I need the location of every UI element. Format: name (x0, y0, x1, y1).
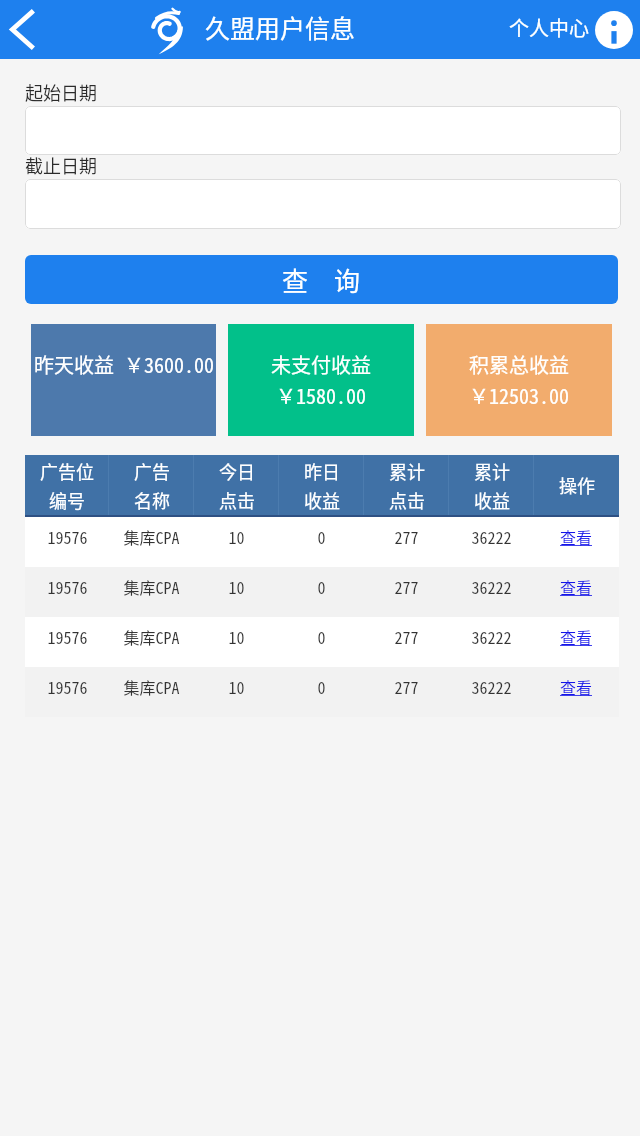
staticText: 查看 (560, 625, 593, 648)
staticText: 277 (394, 525, 419, 548)
button[interactable]: 累计 收益 (449, 455, 534, 515)
staticText: 查看 (560, 675, 593, 698)
button[interactable]: 19576 (25, 517, 619, 567)
staticText: 36222 (471, 675, 512, 698)
button[interactable]: 19576 (25, 567, 619, 617)
staticText: 今日 点击 (219, 458, 255, 513)
staticText: 个人中心 (509, 13, 589, 42)
staticText: 查看 (560, 525, 593, 548)
staticText: 277 (394, 625, 419, 648)
staticText: 0 (317, 525, 326, 548)
staticText: 36222 (471, 575, 512, 598)
staticText: 19576 (47, 575, 88, 598)
button[interactable]: 查 询 (25, 255, 618, 304)
staticText: 0 (317, 675, 326, 698)
staticText: 积累总收益 ￥12503.00 (469, 350, 569, 410)
staticText: 截止日期 (25, 152, 97, 178)
button[interactable]: 未支付收益 ￥1580.00 (228, 324, 414, 436)
staticText: 0 (317, 625, 326, 648)
button[interactable]: 广告位 编号 (25, 455, 109, 515)
button[interactable]: 积累总收益 ￥12503.00 (426, 324, 612, 436)
button[interactable]: 昨天收益 ￥3600.00 (31, 324, 216, 436)
staticText: 累计 点击 (389, 458, 425, 513)
button[interactable]: 累计 点击 (364, 455, 449, 515)
staticText: 36222 (471, 625, 512, 648)
staticText: 操作 (559, 472, 595, 498)
button[interactable]: Back (0, 0, 44, 59)
button[interactable]: 19576 (25, 617, 619, 667)
staticText: 广告位 编号 (40, 458, 94, 513)
button[interactable]: 19576 (25, 667, 619, 717)
staticText: 19576 (47, 525, 88, 548)
button[interactable]: 广告 名称 (109, 455, 194, 515)
staticText: 查看 (560, 575, 593, 598)
staticText: 10 (228, 625, 245, 648)
button[interactable]: 查看 (534, 617, 619, 667)
button[interactable]: 查看 (534, 667, 619, 717)
button[interactable] (25, 179, 621, 229)
staticText: 久盟用户信息 (205, 9, 356, 45)
staticText: 0 (317, 575, 326, 598)
button[interactable]: 查看 (534, 567, 619, 617)
staticText: 起始日期 (25, 79, 97, 105)
staticText: 277 (394, 675, 419, 698)
staticText: 19576 (47, 675, 88, 698)
staticText: 累计 收益 (474, 458, 510, 513)
staticText: 10 (228, 675, 245, 698)
staticText: 10 (228, 525, 245, 548)
button[interactable]: 查看 (534, 517, 619, 567)
staticText: 昨天收益 ￥3600.00 (34, 350, 214, 410)
staticText: 36222 (471, 525, 512, 548)
staticText: 昨日 收益 (304, 458, 340, 513)
staticText: 集库CPA (123, 675, 180, 698)
staticText: 集库CPA (123, 575, 180, 598)
staticText: 集库CPA (123, 525, 180, 548)
button[interactable]: 操作 (534, 455, 619, 515)
staticText: 10 (228, 575, 245, 598)
staticText: 集库CPA (123, 625, 180, 648)
button[interactable]: 个人中心 (509, 11, 633, 49)
staticText: 277 (394, 575, 419, 598)
button[interactable]: 昨日 收益 (279, 455, 364, 515)
staticText: 广告 名称 (134, 458, 170, 513)
button[interactable]: 今日 点击 (194, 455, 279, 515)
button[interactable] (25, 106, 621, 155)
staticText: 未支付收益 ￥1580.00 (271, 350, 371, 410)
staticText: 19576 (47, 625, 88, 648)
staticText: 查 询 (282, 261, 361, 299)
